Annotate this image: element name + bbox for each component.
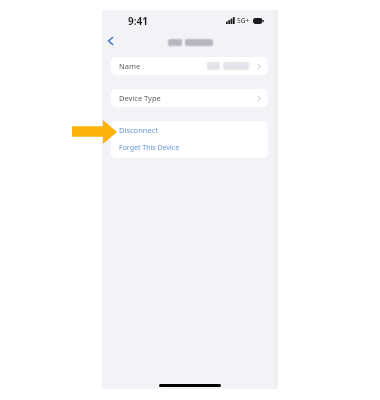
button[interactable]: Name: [111, 57, 268, 75]
button[interactable]: Forget This Device: [111, 138, 268, 158]
staticText: Name: [119, 61, 141, 71]
button[interactable]: Device Type: [111, 89, 268, 107]
button[interactable]: Disconnect: [111, 121, 268, 139]
staticText: 5G+: [237, 16, 250, 25]
staticText: Disconnect: [119, 125, 158, 135]
staticText: Forget This Device: [119, 143, 180, 153]
button[interactable]: Back: [103, 34, 117, 48]
staticText: 9:41: [128, 14, 148, 28]
staticText: Device Type: [119, 93, 161, 103]
